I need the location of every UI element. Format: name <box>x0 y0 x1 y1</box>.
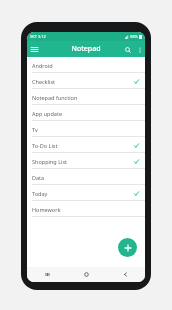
staticText: Notepad <box>71 44 101 54</box>
button[interactable]: Android <box>27 57 145 73</box>
button[interactable]: Notepad function <box>27 89 145 105</box>
staticText: Notepad function <box>32 94 78 101</box>
button[interactable]: Tv <box>27 121 145 137</box>
button[interactable]: More options <box>134 44 145 55</box>
button[interactable]: Checklist <box>27 73 145 89</box>
staticText: Tv <box>32 126 38 133</box>
staticText: App update <box>32 110 63 117</box>
button[interactable]: Add note <box>118 238 137 257</box>
staticText: Checklist <box>32 78 56 85</box>
button[interactable]: Home <box>67 267 106 282</box>
button[interactable]: Data <box>27 169 145 185</box>
staticText: Data <box>32 174 45 181</box>
staticText: Homework <box>32 206 61 213</box>
button[interactable]: Search <box>121 43 134 56</box>
button[interactable]: Open navigation drawer <box>27 42 41 56</box>
staticText: 58% <box>130 34 138 39</box>
button[interactable]: Shopping List <box>27 153 145 169</box>
staticText: Android <box>32 62 53 69</box>
button[interactable]: Recent apps <box>27 267 67 282</box>
staticText: Today <box>32 190 48 197</box>
button[interactable]: App update <box>27 105 145 121</box>
staticText: To-Do List <box>32 142 58 149</box>
staticText: SKT 3:12 <box>30 34 46 39</box>
button[interactable]: Homework <box>27 201 145 217</box>
button[interactable]: Back <box>106 267 145 282</box>
button[interactable]: Today <box>27 185 145 201</box>
button[interactable]: To-Do List <box>27 137 145 153</box>
staticText: Shopping List <box>32 158 68 165</box>
